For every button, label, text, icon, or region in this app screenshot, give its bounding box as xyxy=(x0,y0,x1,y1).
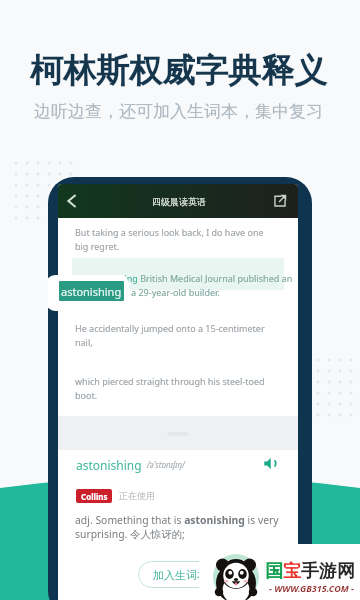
staticText: adj. Something that is astonishing is ve… xyxy=(75,513,287,541)
staticText: He accidentally jumped onto a 15-centime… xyxy=(75,322,275,349)
staticText: astonishing xyxy=(61,284,122,299)
staticText: /ə'stɒnɪʃɪŋ/ xyxy=(147,459,185,470)
staticText: 加入生词本 xyxy=(153,568,208,582)
staticText: 边听边查，还可加入生词本，集中复习 xyxy=(34,101,323,122)
staticText: Collins xyxy=(81,491,108,502)
button[interactable]: Share xyxy=(274,195,286,207)
staticText: 正在使用 xyxy=(119,490,155,501)
staticText: 柯林斯权威字典释义 xyxy=(30,50,327,92)
staticText: 宝 xyxy=(283,560,301,583)
staticText: 手游网 xyxy=(301,560,355,583)
button[interactable]: Back xyxy=(68,195,76,207)
staticText: which pierced straight through his steel… xyxy=(75,375,275,402)
staticText: 四级晨读英语 xyxy=(152,196,206,207)
staticText: astonishing xyxy=(76,457,142,473)
staticText: 国 xyxy=(265,560,283,583)
staticText: An astonishing British Medical Journal p… xyxy=(75,272,294,299)
button[interactable]: 加入生词本 xyxy=(138,561,222,588)
staticText: But taking a serious look back, I do hav… xyxy=(75,226,275,253)
staticText: - WWW.GB315.COM - xyxy=(269,582,354,594)
button[interactable]: Play pronunciation xyxy=(264,457,277,470)
